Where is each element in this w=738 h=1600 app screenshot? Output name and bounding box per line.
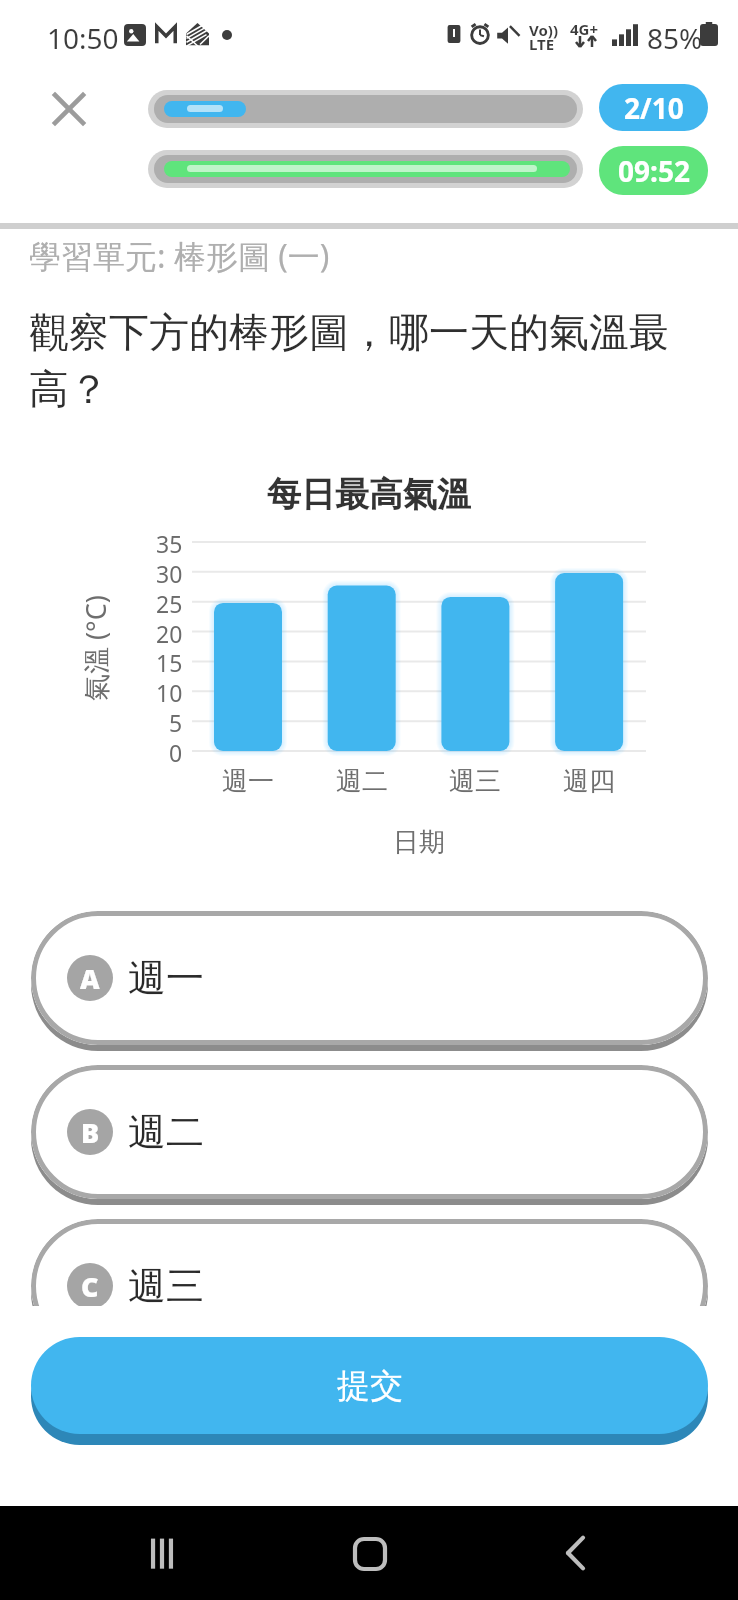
staticText: 20 [156,618,183,646]
staticText: 0 [169,737,183,765]
staticText: 日期 [393,826,445,856]
staticText: 氣溫 (°C) [77,595,114,701]
staticText: 09:52 [618,152,690,190]
staticText: 4G+ [570,19,599,39]
staticText: 週三 [128,1262,204,1310]
staticText: 25 [156,588,183,616]
staticText: 2/10 [624,89,684,127]
staticText: LTE [529,34,555,54]
staticText: 35 [156,528,183,556]
staticText: 觀察下方的棒形圖，哪一天的氣溫最高？ [29,307,701,414]
button[interactable]: B [31,1065,708,1199]
staticText: 週二 [128,1108,204,1156]
staticText: 每日最高氣溫 [267,473,471,516]
staticText: 週二 [336,765,388,795]
staticText: 學習單元: 棒形圖 (一) [29,234,330,278]
button[interactable]: C [31,1219,708,1353]
staticText: 週一 [128,954,204,1002]
staticText: A [80,960,100,997]
staticText: 週四 [563,765,615,795]
staticText: B [81,1114,100,1151]
staticText: 提交 [337,1365,403,1407]
staticText: 85% [647,19,703,57]
staticText: 5 [169,707,183,735]
button[interactable]: Back [506,1506,646,1600]
button[interactable]: Close [39,79,98,138]
staticText: 週三 [449,765,501,795]
button[interactable]: Home [299,1506,439,1600]
button[interactable]: 提交 [31,1337,708,1434]
staticText: 10:50 [47,19,119,57]
staticText: 15 [156,647,183,675]
button[interactable]: A [31,911,708,1045]
staticText: C [81,1268,99,1305]
staticText: 30 [156,558,183,586]
staticText: 週一 [222,765,274,795]
staticText: Vo)) [529,20,558,40]
staticText: 10 [156,677,183,705]
button[interactable]: Recent apps [92,1506,232,1600]
